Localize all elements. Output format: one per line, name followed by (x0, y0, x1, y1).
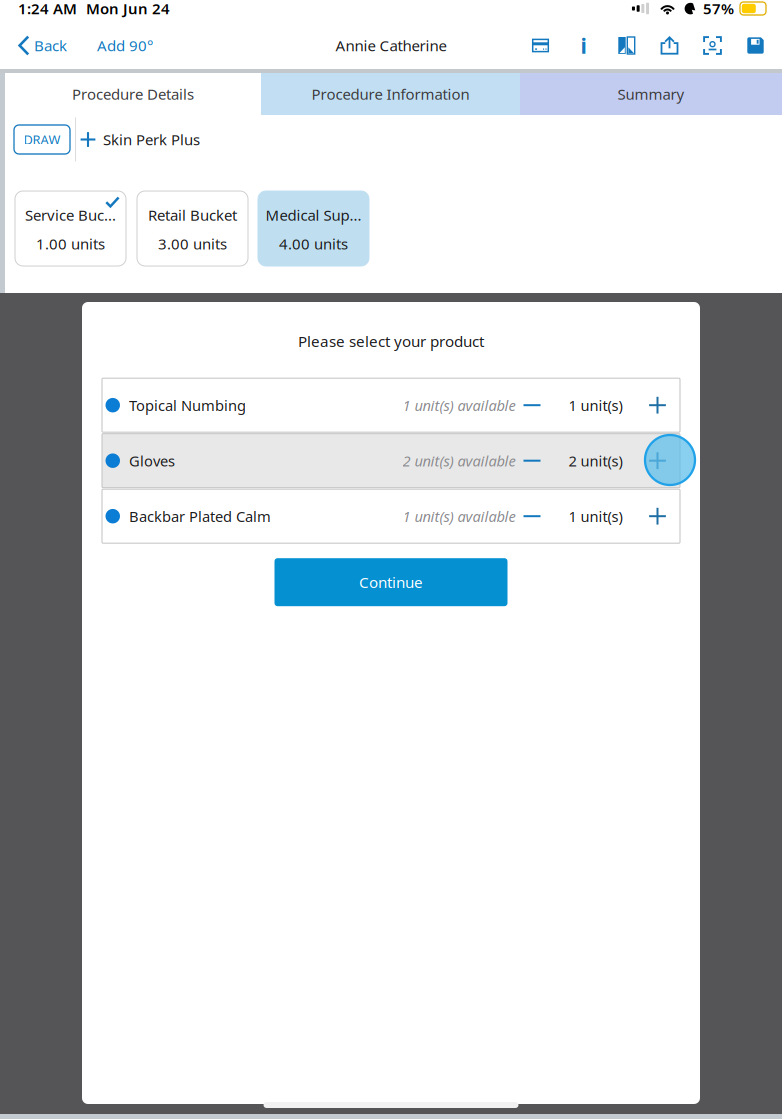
button[interactable]: Information (562, 22, 605, 69)
staticText: 1 unit(s) (568, 395, 622, 415)
staticText: Procedure Information (311, 84, 469, 104)
staticText: Mon Jun 24 (86, 0, 170, 18)
staticText: Please select your product (298, 331, 484, 351)
button[interactable]: Procedure Details (5, 73, 261, 115)
staticText: Medical Sup... (265, 205, 361, 225)
staticText: Continue (359, 572, 423, 592)
button[interactable]: Topical Numbing (102, 378, 680, 432)
staticText: i (580, 31, 586, 60)
button[interactable]: Save (734, 22, 777, 69)
staticText: Annie Catherine (335, 35, 446, 55)
button[interactable]: Add 90° (93, 22, 157, 69)
button[interactable]: Compare photos (605, 22, 648, 69)
staticText: 1 unit(s) available (402, 506, 515, 526)
staticText: Add 90° (97, 35, 153, 55)
button[interactable]: Share (648, 22, 691, 69)
staticText: 1 unit(s) available (402, 395, 515, 415)
staticText: DRAW (23, 131, 60, 148)
button[interactable]: Continue (274, 558, 507, 606)
button[interactable]: Summary (520, 73, 782, 115)
button[interactable]: DRAW (14, 125, 70, 154)
staticText: 2 unit(s) (568, 451, 622, 470)
staticText: Skin Perk Plus (103, 130, 200, 149)
staticText: 1:24 AM (18, 0, 77, 18)
staticText: 3.00 units (158, 234, 227, 254)
button[interactable]: Payment methods (519, 22, 562, 69)
button[interactable]: Scan face (691, 22, 734, 69)
button[interactable]: Medical Sup... (258, 191, 369, 266)
button[interactable]: Backbar Plated Calm (102, 489, 680, 543)
staticText: 57% (703, 0, 734, 18)
staticText: 1 unit(s) (568, 506, 622, 526)
button[interactable]: Skin Perk Plus (80, 121, 200, 157)
staticText: 4.00 units (279, 234, 348, 254)
button[interactable]: Service Buc... (15, 191, 126, 266)
staticText: Service Buc... (25, 205, 116, 225)
staticText: 1.00 units (36, 234, 105, 254)
staticText: Topical Numbing (129, 395, 246, 415)
button[interactable]: Gloves (102, 434, 680, 488)
button[interactable]: Retail Bucket (137, 191, 248, 266)
button[interactable]: Back (0, 22, 73, 69)
staticText: Back (34, 35, 67, 55)
staticText: Retail Bucket (148, 205, 237, 225)
staticText: Summary (617, 84, 684, 104)
staticText: 2 unit(s) available (402, 451, 515, 470)
staticText: Gloves (129, 451, 175, 470)
button[interactable]: Procedure Information (261, 73, 520, 115)
staticText: Backbar Plated Calm (129, 506, 271, 526)
staticText: Procedure Details (72, 84, 194, 104)
